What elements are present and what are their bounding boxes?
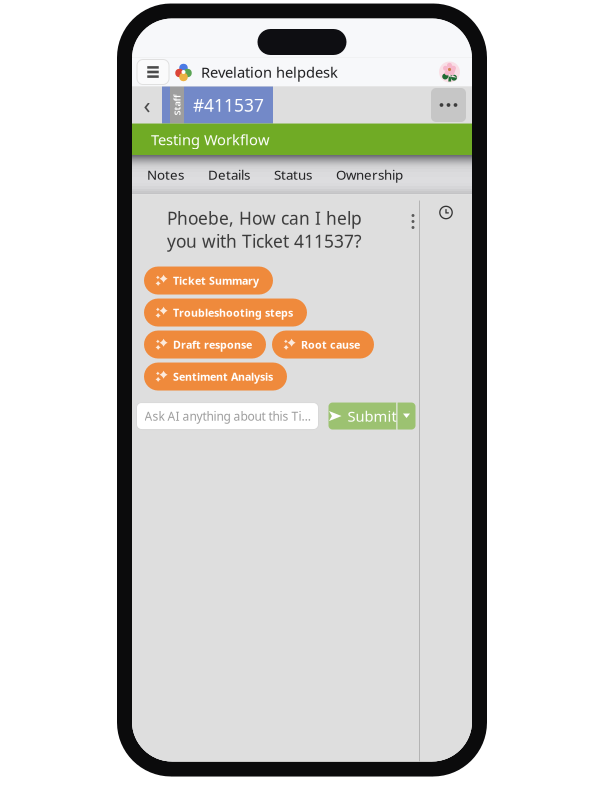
button[interactable]: More xyxy=(431,88,466,122)
staticText: Testing Workflow xyxy=(151,130,270,149)
button[interactable]: Menu xyxy=(137,59,169,84)
staticText: Ask AI anything about this Ticket xyxy=(144,408,310,424)
staticText: #411537 xyxy=(193,93,264,116)
button[interactable]: Back xyxy=(132,86,162,123)
button[interactable]: Details xyxy=(196,155,262,194)
button[interactable]: More options xyxy=(404,209,422,233)
button[interactable]: Ownership xyxy=(324,155,415,194)
button[interactable]: Staff xyxy=(162,86,273,123)
staticText: Notes xyxy=(147,166,184,183)
staticText: Details xyxy=(208,166,250,183)
button[interactable]: Ticket Summary xyxy=(144,266,273,294)
staticText: Staff xyxy=(166,99,187,111)
button[interactable]: Notes xyxy=(135,155,196,194)
staticText: Phoebe, How can I help you with Ticket 4… xyxy=(167,206,362,252)
staticText: Root cause xyxy=(301,337,360,352)
button[interactable]: Submit xyxy=(328,402,396,429)
staticText: Ownership xyxy=(336,166,403,183)
staticText: Status xyxy=(274,166,312,183)
button[interactable]: Profile xyxy=(439,61,460,82)
button[interactable]: History xyxy=(432,198,460,226)
button[interactable]: Root cause xyxy=(272,330,374,358)
button[interactable]: Sentiment Analysis xyxy=(144,362,287,390)
button[interactable]: Troubleshooting steps xyxy=(144,298,307,326)
staticText: Troubleshooting steps xyxy=(173,305,293,320)
button[interactable]: More submit options xyxy=(397,402,415,429)
staticText: Sentiment Analysis xyxy=(173,369,273,384)
staticText: Draft response xyxy=(173,337,252,352)
staticText: Revelation helpdesk xyxy=(201,62,338,82)
staticText: Submit xyxy=(347,406,396,426)
button[interactable]: Draft response xyxy=(144,330,266,358)
staticText: ‹ xyxy=(143,90,150,120)
button[interactable]: Status xyxy=(262,155,324,194)
staticText: Ticket Summary xyxy=(173,273,259,288)
